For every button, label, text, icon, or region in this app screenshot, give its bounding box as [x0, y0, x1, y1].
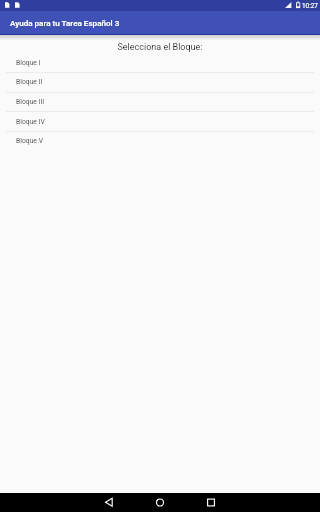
button[interactable]: Bloque IV [0, 112, 320, 132]
staticText: Selecciona el Bloque: [0, 42, 320, 53]
staticText: Bloque V [16, 137, 43, 145]
staticText: Bloque I [16, 59, 41, 67]
button[interactable]: Bloque III [0, 92, 320, 112]
button[interactable]: Bloque I [0, 53, 320, 73]
staticText: Bloque II [16, 78, 43, 86]
button[interactable]: Recent apps [193, 493, 229, 512]
staticText: Bloque III [16, 98, 45, 106]
button[interactable]: Back [91, 493, 127, 512]
button[interactable]: Bloque II [0, 72, 320, 92]
staticText: Ayuda para tu Tarea Español 3 [10, 18, 120, 27]
button[interactable]: Home [142, 493, 178, 512]
staticText: Bloque IV [16, 118, 45, 126]
button[interactable]: Bloque V [0, 131, 320, 151]
staticText: 10:27 [302, 2, 318, 10]
